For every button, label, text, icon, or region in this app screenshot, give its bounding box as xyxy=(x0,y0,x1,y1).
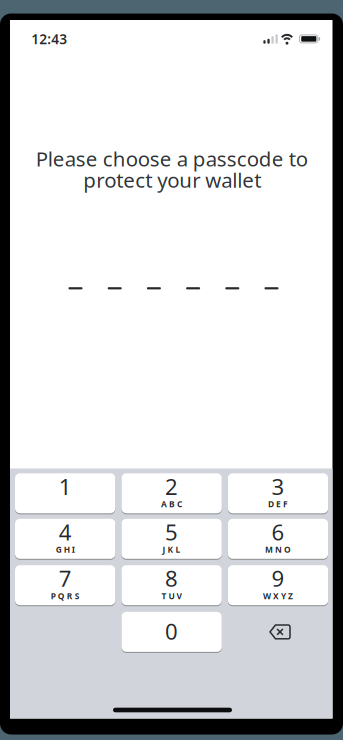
staticText: 7 xyxy=(59,563,72,593)
staticText: DEF xyxy=(268,498,288,510)
staticText: GHI xyxy=(56,544,75,555)
button[interactable]: Delete xyxy=(228,612,328,652)
staticText: 0 xyxy=(165,616,178,646)
button[interactable]: 2 xyxy=(121,473,222,513)
staticText: protect your wallet xyxy=(83,166,261,194)
staticText: Please choose a passcode to xyxy=(36,145,308,172)
button[interactable]: 9 xyxy=(228,565,328,605)
staticText: 6 xyxy=(271,517,284,547)
staticText: PQRS xyxy=(51,590,80,602)
button[interactable]: 4 xyxy=(15,519,115,559)
staticText: MNO xyxy=(265,544,291,555)
staticText: JKL xyxy=(163,544,181,555)
staticText: 3 xyxy=(271,471,284,501)
staticText: 9 xyxy=(271,563,284,593)
button[interactable]: 5 xyxy=(121,519,222,559)
button[interactable]: 0 xyxy=(121,612,222,652)
staticText: TUV xyxy=(162,590,182,602)
button[interactable]: 8 xyxy=(121,565,222,605)
staticText: 8 xyxy=(165,563,178,593)
staticText: 12:43 xyxy=(31,29,67,48)
staticText: 4 xyxy=(59,517,72,547)
button[interactable]: 3 xyxy=(228,473,328,513)
button[interactable]: 6 xyxy=(228,519,328,559)
button[interactable]: 7 xyxy=(15,565,115,605)
staticText: 5 xyxy=(165,517,178,547)
staticText: ABC xyxy=(161,498,182,510)
staticText: 2 xyxy=(165,471,178,501)
staticText: 1 xyxy=(59,471,72,501)
staticText: WXYZ xyxy=(263,590,293,602)
button[interactable]: 1 xyxy=(15,473,115,513)
